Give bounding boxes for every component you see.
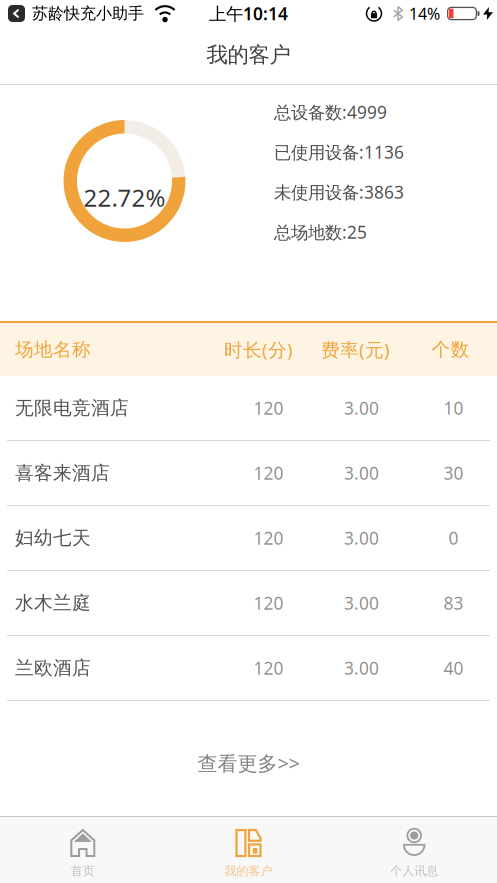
button[interactable]: 兰欧酒店 [0, 636, 497, 701]
button[interactable]: 首页 [0, 816, 166, 883]
staticText: 83 [443, 591, 463, 614]
staticText: 40 [443, 656, 463, 679]
staticText: 120 [253, 461, 283, 484]
staticText: 场地名称 [15, 338, 91, 361]
staticText: 120 [253, 591, 283, 614]
button[interactable]: 妇幼七天 [0, 506, 497, 571]
staticText: 总场地数:25 [274, 220, 367, 243]
staticText: 已使用设备:1136 [274, 140, 404, 163]
staticText: 喜客来酒店 [15, 461, 110, 484]
staticText: 首页 [71, 864, 95, 878]
staticText: 120 [253, 396, 283, 419]
staticText: 3.00 [344, 396, 379, 419]
staticText: 妇幼七天 [15, 526, 91, 549]
staticText: 10 [443, 396, 463, 419]
staticText: 无限电竞酒店 [15, 396, 129, 419]
staticText: 30 [443, 461, 463, 484]
staticText: 水木兰庭 [15, 591, 91, 614]
staticText: 14% [409, 3, 440, 24]
staticText: 0 [448, 526, 458, 549]
staticText: 时长(分) [224, 337, 293, 362]
staticText: 3.00 [344, 656, 379, 679]
staticText: 120 [253, 656, 283, 679]
button[interactable]: 个人讯息 [331, 816, 497, 883]
staticText: 我的客户 [224, 864, 272, 878]
staticText: 兰欧酒店 [15, 656, 91, 679]
staticText: 查看更多>> [197, 750, 299, 776]
staticText: 费率(元) [321, 337, 390, 362]
staticText: 3.00 [344, 591, 379, 614]
staticText: 22.72% [83, 182, 165, 213]
staticText: 我的客户 [206, 42, 290, 68]
staticText: 未使用设备:3863 [274, 180, 404, 203]
button[interactable]: 查看更多>> [168, 738, 328, 788]
button[interactable]: 无限电竞酒店 [0, 376, 497, 441]
staticText: 总设备数:4999 [274, 100, 387, 123]
staticText: 个人讯息 [390, 864, 438, 878]
staticText: 苏龄快充小助手 [32, 4, 144, 23]
staticText: 个数 [431, 338, 469, 361]
button[interactable]: 喜客来酒店 [0, 441, 497, 506]
staticText: 3.00 [344, 526, 379, 549]
button[interactable]: 水木兰庭 [0, 571, 497, 636]
button[interactable]: 返回 [7, 4, 26, 23]
staticText: 120 [253, 526, 283, 549]
staticText: 3.00 [344, 461, 379, 484]
button[interactable]: 我的客户 [166, 816, 331, 883]
staticText: 上午10:14 [209, 2, 288, 25]
